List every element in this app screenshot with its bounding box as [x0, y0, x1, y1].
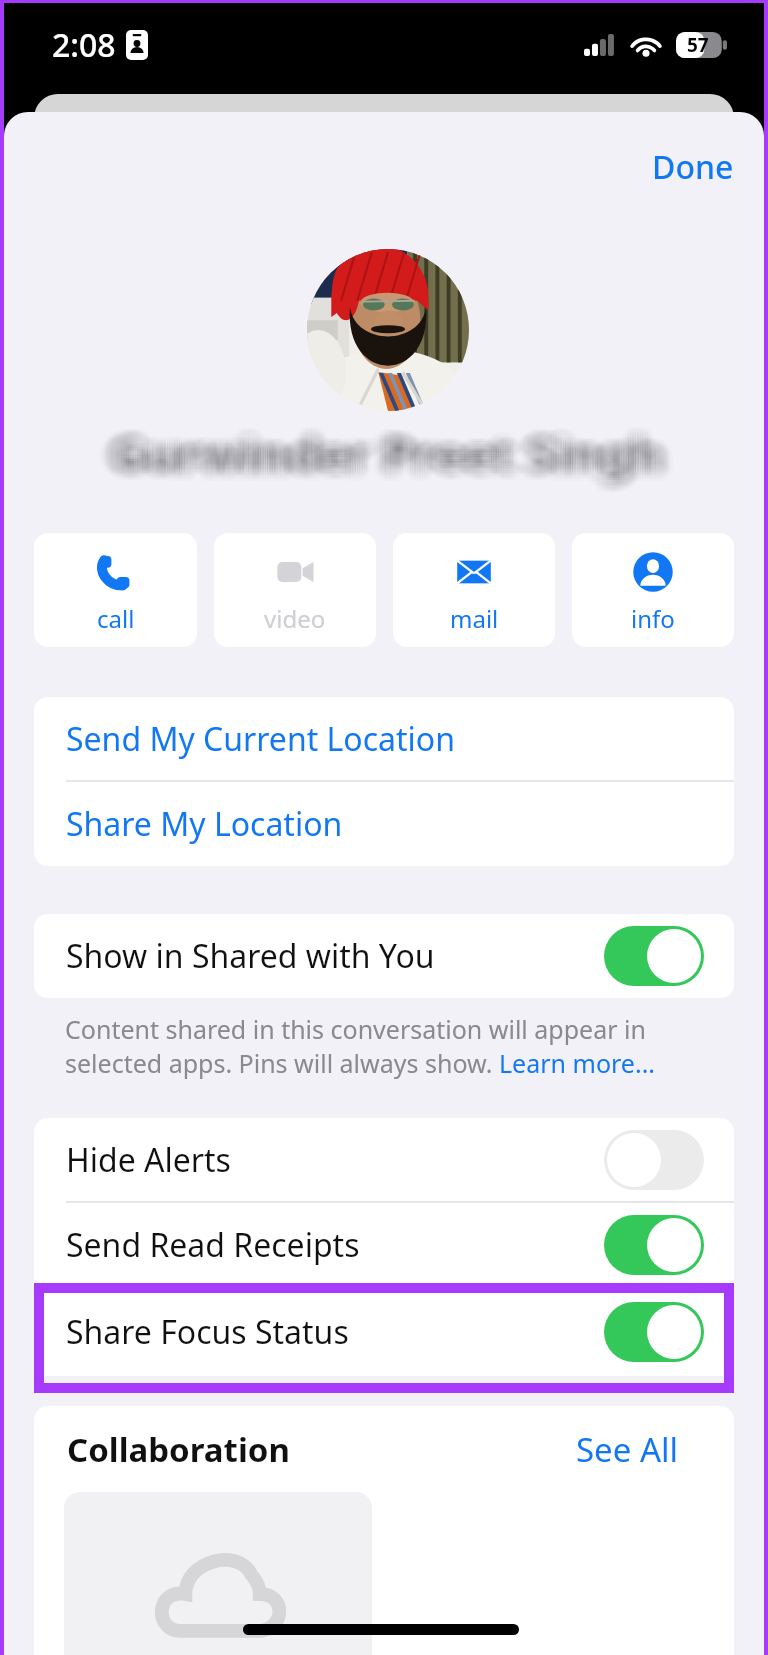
staticText: Gurwinder Preet Singh [115, 418, 668, 485]
staticText: Gurwinder Preet Singh [102, 418, 655, 485]
staticText: Gurwinder Preet Singh [122, 420, 675, 487]
staticText: Gurwinder Preet Singh [105, 429, 658, 496]
staticText: Gurwinder Preet Singh [105, 415, 658, 482]
staticText: Gurwinder Preet Singh [113, 418, 666, 485]
staticText: Gurwinder Preet Singh [98, 418, 651, 485]
staticText: Gurwinder Preet Singh [117, 418, 670, 485]
staticText: Gurwinder Preet Singh [119, 415, 672, 482]
button[interactable]: Send Read Receipts [34, 1203, 734, 1287]
button[interactable]: info [572, 533, 734, 647]
staticText: Gurwinder Preet Singh [107, 425, 660, 492]
staticText: Gurwinder Preet Singh [115, 429, 668, 496]
staticText: Gurwinder Preet Singh [120, 417, 673, 484]
staticText: Gurwinder Preet Singh [98, 420, 651, 487]
button[interactable]: Switch off [604, 1130, 704, 1190]
staticText: Gurwinder Preet Singh [112, 422, 665, 489]
staticText: Gurwinder Preet Singh [105, 427, 658, 494]
staticText: Gurwinder Preet Singh [122, 422, 675, 489]
staticText: Gurwinder Preet Singh [119, 420, 672, 487]
staticText: Gurwinder Preet Singh [102, 423, 655, 490]
staticText: Gurwinder Preet Singh [115, 415, 668, 482]
button[interactable]: Learn more... [499, 1046, 656, 1080]
staticText: Gurwinder Preet Singh [119, 417, 672, 484]
staticText: Gurwinder Preet Singh [107, 412, 660, 479]
button[interactable]: Done [642, 139, 744, 195]
staticText: Gurwinder Preet Singh [108, 418, 661, 485]
staticText: Gurwinder Preet Singh [107, 418, 660, 485]
staticText: Gurwinder Preet Singh [105, 425, 658, 492]
button[interactable]: See All [576, 1427, 679, 1472]
staticText: Gurwinder Preet Singh [117, 425, 670, 492]
staticText: Gurwinder Preet Singh [107, 417, 660, 484]
staticText: call [97, 602, 135, 635]
staticText: Gurwinder Preet Singh [120, 425, 673, 492]
staticText: Gurwinder Preet Singh [119, 423, 672, 490]
staticText: Gurwinder Preet Singh [108, 412, 661, 479]
staticText: Gurwinder Preet Singh [115, 417, 668, 484]
button[interactable]: Switch on [604, 1302, 704, 1362]
staticText: Gurwinder Preet Singh [117, 415, 670, 482]
staticText: Done [652, 145, 734, 189]
button[interactable]: Show in Shared with You [34, 914, 734, 998]
staticText: Gurwinder Preet Singh [103, 412, 656, 479]
staticText: Gurwinder Preet Singh [120, 422, 673, 489]
staticText: Gurwinder Preet Singh [112, 413, 665, 480]
staticText: Gurwinder Preet Singh [105, 423, 658, 490]
staticText: Gurwinder Preet Singh [100, 422, 653, 489]
button[interactable]: Switch on [604, 1215, 704, 1275]
staticText: Gurwinder Preet Singh [117, 417, 670, 484]
staticText: Share Focus Status [66, 1310, 349, 1354]
staticText: Gurwinder Preet Singh [100, 418, 653, 485]
staticText: Collaboration [67, 1427, 290, 1472]
staticText: Gurwinder Preet Singh [112, 415, 665, 482]
staticText: Gurwinder Preet Singh [96, 418, 649, 485]
button[interactable]: call [34, 533, 197, 647]
staticText: Gurwinder Preet Singh [108, 413, 661, 480]
button[interactable]: Hide Alerts [34, 1118, 734, 1201]
button[interactable]: video [214, 533, 376, 647]
button[interactable]: Share Focus Status [34, 1287, 734, 1376]
staticText: Gurwinder Preet Singh [117, 427, 670, 494]
staticText: Gurwinder Preet Singh [113, 417, 666, 484]
staticText: Gurwinder Preet Singh [102, 420, 655, 487]
button[interactable]: Share My Location [34, 782, 734, 866]
staticText: Gurwinder Preet Singh [107, 429, 660, 496]
staticText: Gurwinder Preet Singh [103, 423, 656, 490]
staticText: 2:08 [52, 23, 116, 67]
staticText: Gurwinder Preet Singh [113, 412, 666, 479]
staticText: Gurwinder Preet Singh [119, 418, 672, 485]
staticText: Content shared in this conversation will… [65, 1012, 646, 1046]
staticText: Gurwinder Preet Singh [113, 415, 666, 482]
staticText: Gurwinder Preet Singh [103, 429, 656, 496]
staticText: Gurwinder Preet Singh [117, 423, 670, 490]
staticText: Gurwinder Preet Singh [122, 417, 675, 484]
staticText: Gurwinder Preet Singh [107, 427, 660, 494]
button[interactable]: Switch on [604, 926, 704, 986]
staticText: Gurwinder Preet Singh [105, 420, 658, 487]
staticText: Gurwinder Preet Singh [124, 422, 677, 489]
staticText: Gurwinder Preet Singh [112, 429, 665, 496]
staticText: Gurwinder Preet Singh [110, 418, 663, 485]
staticText: Gurwinder Preet Singh [102, 413, 655, 480]
button[interactable]: mail [393, 533, 555, 647]
staticText: Gurwinder Preet Singh [103, 427, 656, 494]
staticText: Gurwinder Preet Singh [98, 423, 651, 490]
staticText: Gurwinder Preet Singh [124, 418, 677, 485]
staticText: Gurwinder Preet Singh [108, 429, 661, 496]
staticText: Gurwinder Preet Singh [115, 422, 668, 489]
staticText: Gurwinder Preet Singh [113, 429, 666, 496]
staticText: Gurwinder Preet Singh [107, 415, 660, 482]
staticText: Gurwinder Preet Singh [102, 415, 655, 482]
staticText: Gurwinder Preet Singh [110, 413, 663, 480]
staticText: Gurwinder Preet Singh [98, 417, 651, 484]
staticText: Gurwinder Preet Singh [110, 412, 663, 479]
staticText: See All [576, 1427, 679, 1472]
staticText: Gurwinder Preet Singh [100, 417, 653, 484]
staticText: Gurwinder Preet Singh [108, 427, 661, 494]
staticText: Gurwinder Preet Singh [117, 412, 670, 479]
staticText: Gurwinder Preet Singh [115, 412, 668, 479]
staticText: Gurwinder Preet Singh [107, 420, 660, 487]
staticText: Gurwinder Preet Singh [108, 417, 661, 484]
staticText: Gurwinder Preet Singh [115, 423, 668, 490]
button[interactable]: Send My Current Location [34, 697, 734, 780]
